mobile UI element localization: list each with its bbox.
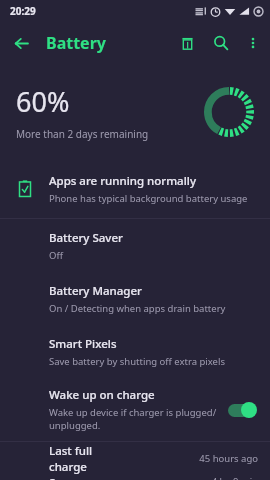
staticText: Screen usage since full charge — [49, 475, 130, 480]
staticText: Phone has typical background battery usa… — [49, 192, 248, 205]
button[interactable]: Delete — [170, 26, 204, 60]
button[interactable]: Search — [204, 26, 238, 60]
button[interactable]: Battery Manager — [0, 272, 270, 325]
button[interactable]: More options — [238, 28, 268, 58]
staticText: More than 2 days remaining — [16, 127, 149, 141]
staticText: Apps are running normally — [49, 173, 196, 189]
staticText: Wake up on charge — [49, 387, 155, 403]
staticText: Save battery by shutting off extra pixel… — [49, 355, 225, 368]
button[interactable]: Apps are running normally — [0, 160, 270, 218]
staticText: Battery Saver — [49, 230, 123, 246]
staticText: Smart Pixels — [49, 336, 117, 352]
staticText: Battery — [46, 32, 106, 54]
button[interactable]: Wake up on charge — [0, 378, 270, 441]
button[interactable]: Back — [0, 22, 42, 64]
staticText: Wake up device if charger is plugged/ un… — [49, 406, 217, 432]
staticText: Last full charge — [49, 443, 124, 475]
staticText: Battery Manager — [49, 283, 142, 299]
button[interactable]: Wake up on charge toggle — [228, 402, 258, 418]
button[interactable]: Screen usage since full charge — [0, 475, 270, 480]
staticText: 20:29 — [10, 4, 36, 18]
button[interactable]: Smart Pixels — [0, 325, 270, 378]
button[interactable]: Last full charge — [0, 442, 270, 475]
button[interactable]: Battery Saver — [0, 219, 270, 272]
staticText: 60% — [16, 83, 70, 120]
staticText: On / Detecting when apps drain battery — [49, 302, 226, 315]
staticText: 45 hours ago — [199, 452, 258, 465]
staticText: 4 hr, 9 min — [211, 475, 258, 480]
staticText: Off — [49, 249, 63, 262]
